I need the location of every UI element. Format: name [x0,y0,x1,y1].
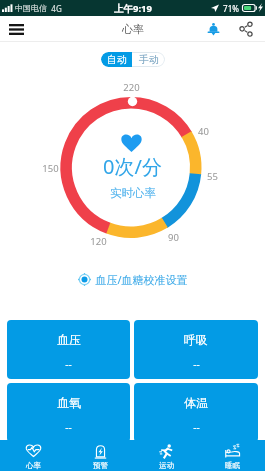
staticText: 睡眠 [225,461,240,470]
staticText: -- [193,420,200,434]
button[interactable]: 运动 [133,440,199,471]
staticText: 150 [42,162,59,174]
button[interactable]: 自动 [101,52,132,67]
staticText: 预警 [93,461,108,470]
button[interactable]: 呼吸 [134,320,258,379]
staticText: 血氧 [57,395,81,410]
staticText: 运动 [159,461,174,470]
staticText: 220 [123,81,140,93]
staticText: 55 [207,170,218,182]
button[interactable]: 血压/血糖校准设置 [78,271,188,288]
staticText: 120 [90,235,107,247]
staticText: 40 [198,125,209,137]
staticText: 血压 [57,332,81,347]
button[interactable]: 手动 [132,52,165,67]
button[interactable]: 预警 [67,440,133,471]
staticText: 心率 [26,461,41,470]
staticText: 上午9:19 [114,2,152,15]
button[interactable]: 体温 [134,383,258,442]
button[interactable]: Share [233,16,258,42]
staticText: 心率 [122,22,144,36]
staticText: 中国电信 [15,3,47,13]
staticText: 90 [168,231,179,243]
staticText: 4G [51,3,62,14]
button[interactable]: Menu [2,16,31,42]
staticText: 实时心率 [110,186,156,200]
staticText: 呼吸 [184,332,208,347]
button[interactable]: 血压 [7,320,130,379]
button[interactable]: 血氧 [7,383,130,442]
staticText: 自动 [107,53,127,66]
staticText: 手动 [139,53,159,66]
staticText: 0次/分 [103,153,162,180]
button[interactable]: 心率 [0,440,67,471]
staticText: -- [193,357,200,371]
staticText: 体温 [184,395,208,410]
button[interactable]: Notifications [201,16,225,42]
staticText: -- [65,357,72,371]
staticText: 血压/血糖校准设置 [95,272,188,287]
button[interactable]: 睡眠 [199,440,265,471]
staticText: -- [65,420,72,434]
staticText: 71% [223,3,239,14]
